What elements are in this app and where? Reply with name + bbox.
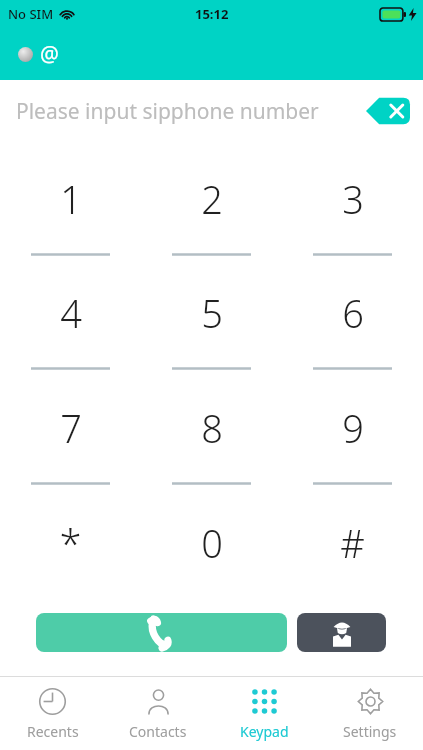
button[interactable]: Account status bbox=[14, 36, 63, 73]
staticText: 4 bbox=[60, 287, 82, 339]
staticText: 6 bbox=[342, 287, 364, 339]
button[interactable]: 1 bbox=[0, 142, 141, 256]
staticText: * bbox=[59, 516, 82, 570]
staticText: @ bbox=[40, 40, 59, 69]
button[interactable]: # bbox=[282, 485, 423, 600]
staticText: 0 bbox=[201, 517, 223, 569]
button[interactable]: 8 bbox=[141, 370, 282, 485]
staticText: 15:12 bbox=[195, 5, 229, 23]
staticText: 9 bbox=[342, 402, 364, 454]
button[interactable]: Delete bbox=[366, 96, 410, 126]
staticText: No SIM bbox=[8, 5, 54, 23]
button[interactable]: 9 bbox=[282, 370, 423, 485]
button[interactable]: Keypad bbox=[211, 677, 317, 750]
button[interactable]: 5 bbox=[141, 256, 282, 370]
staticText: Please input sipphone number bbox=[16, 97, 319, 126]
button[interactable]: Contacts bbox=[105, 677, 211, 750]
button[interactable]: 7 bbox=[0, 370, 141, 485]
button[interactable]: 6 bbox=[282, 256, 423, 370]
button[interactable]: Operator bbox=[297, 613, 386, 652]
staticText: 2 bbox=[201, 173, 223, 225]
staticText: Recents bbox=[27, 722, 79, 741]
staticText: Contacts bbox=[129, 722, 187, 741]
button[interactable]: Call bbox=[36, 613, 287, 652]
button[interactable]: * bbox=[0, 485, 141, 600]
staticText: Settings bbox=[343, 722, 397, 741]
staticText: Keypad bbox=[240, 722, 289, 741]
staticText: # bbox=[340, 517, 365, 569]
button[interactable]: 4 bbox=[0, 256, 141, 370]
button[interactable]: 0 bbox=[141, 485, 282, 600]
button[interactable]: 3 bbox=[282, 142, 423, 256]
staticText: 3 bbox=[342, 173, 364, 225]
staticText: 7 bbox=[60, 402, 82, 454]
button[interactable]: 2 bbox=[141, 142, 282, 256]
staticText: 5 bbox=[201, 287, 223, 339]
staticText: 1 bbox=[60, 173, 82, 225]
button[interactable]: Settings bbox=[317, 677, 423, 750]
button[interactable]: Recents bbox=[0, 677, 105, 750]
staticText: 8 bbox=[201, 402, 223, 454]
